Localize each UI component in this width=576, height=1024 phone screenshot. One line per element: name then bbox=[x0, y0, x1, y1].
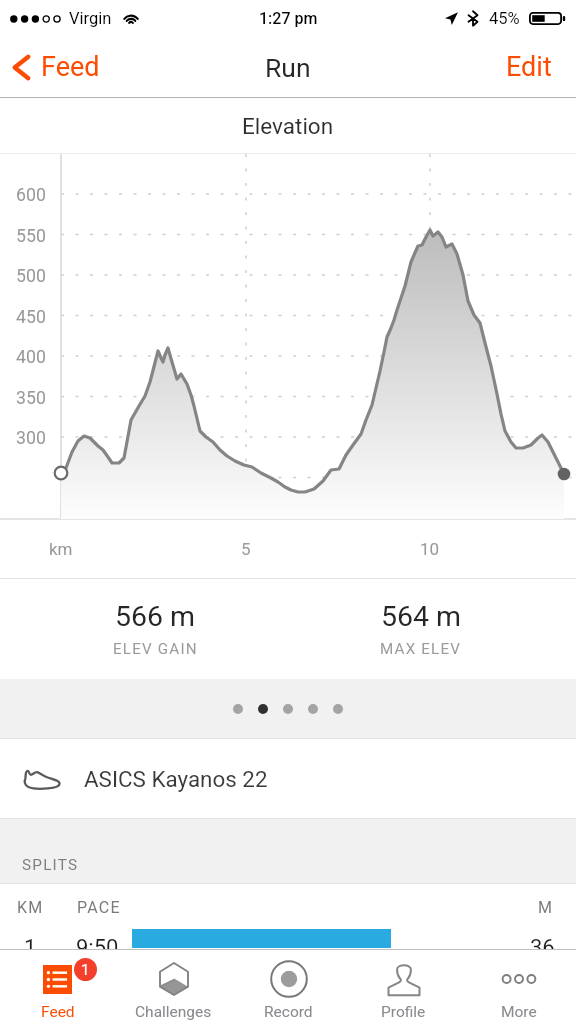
staticText: KM bbox=[17, 898, 44, 917]
button[interactable]: Profile bbox=[346, 950, 461, 1024]
staticText: 1 bbox=[81, 961, 90, 979]
button[interactable]: Feed bbox=[0, 43, 112, 91]
staticText: Edit bbox=[506, 51, 552, 83]
staticText: SPLITS bbox=[22, 856, 79, 874]
staticText: Feed bbox=[41, 51, 100, 83]
button[interactable]: Record bbox=[231, 950, 346, 1024]
staticText: Run bbox=[265, 52, 311, 83]
button[interactable]: Edit bbox=[482, 39, 576, 95]
staticText: M bbox=[538, 898, 552, 917]
staticText: 600 bbox=[16, 185, 46, 206]
staticText: 1 bbox=[24, 935, 37, 961]
staticText: 10 bbox=[420, 539, 440, 559]
button[interactable]: 1 bbox=[0, 950, 116, 1024]
staticText: MAX ELEV bbox=[380, 640, 462, 658]
button[interactable]: More bbox=[461, 950, 576, 1024]
staticText: 9:50 bbox=[76, 935, 119, 961]
staticText: 5 bbox=[241, 539, 251, 559]
staticText: 550 bbox=[16, 226, 46, 247]
staticText: 350 bbox=[16, 388, 46, 409]
staticText: 36 bbox=[530, 935, 555, 961]
staticText: 1:27 pm bbox=[259, 9, 318, 28]
staticText: 566 m bbox=[115, 600, 196, 633]
staticText: More bbox=[501, 1003, 537, 1021]
button[interactable]: ASICS Kayanos 22 bbox=[0, 739, 576, 818]
staticText: 450 bbox=[16, 307, 46, 328]
staticText: 300 bbox=[16, 428, 46, 449]
staticText: 45% bbox=[489, 9, 520, 28]
staticText: km bbox=[49, 539, 73, 559]
staticText: 400 bbox=[16, 347, 46, 368]
staticText: ELEV GAIN bbox=[113, 640, 198, 658]
staticText: 564 m bbox=[381, 600, 462, 633]
staticText: ASICS Kayanos 22 bbox=[84, 766, 268, 792]
staticText: Elevation bbox=[242, 113, 334, 139]
staticText: Feed bbox=[41, 1003, 75, 1021]
staticText: PACE bbox=[77, 898, 121, 917]
staticText: Virgin bbox=[69, 9, 112, 28]
staticText: Record bbox=[264, 1003, 313, 1021]
staticText: 500 bbox=[16, 266, 46, 287]
button[interactable]: Challenges bbox=[116, 950, 231, 1024]
staticText: Challenges bbox=[135, 1003, 212, 1021]
staticText: Profile bbox=[381, 1003, 426, 1021]
